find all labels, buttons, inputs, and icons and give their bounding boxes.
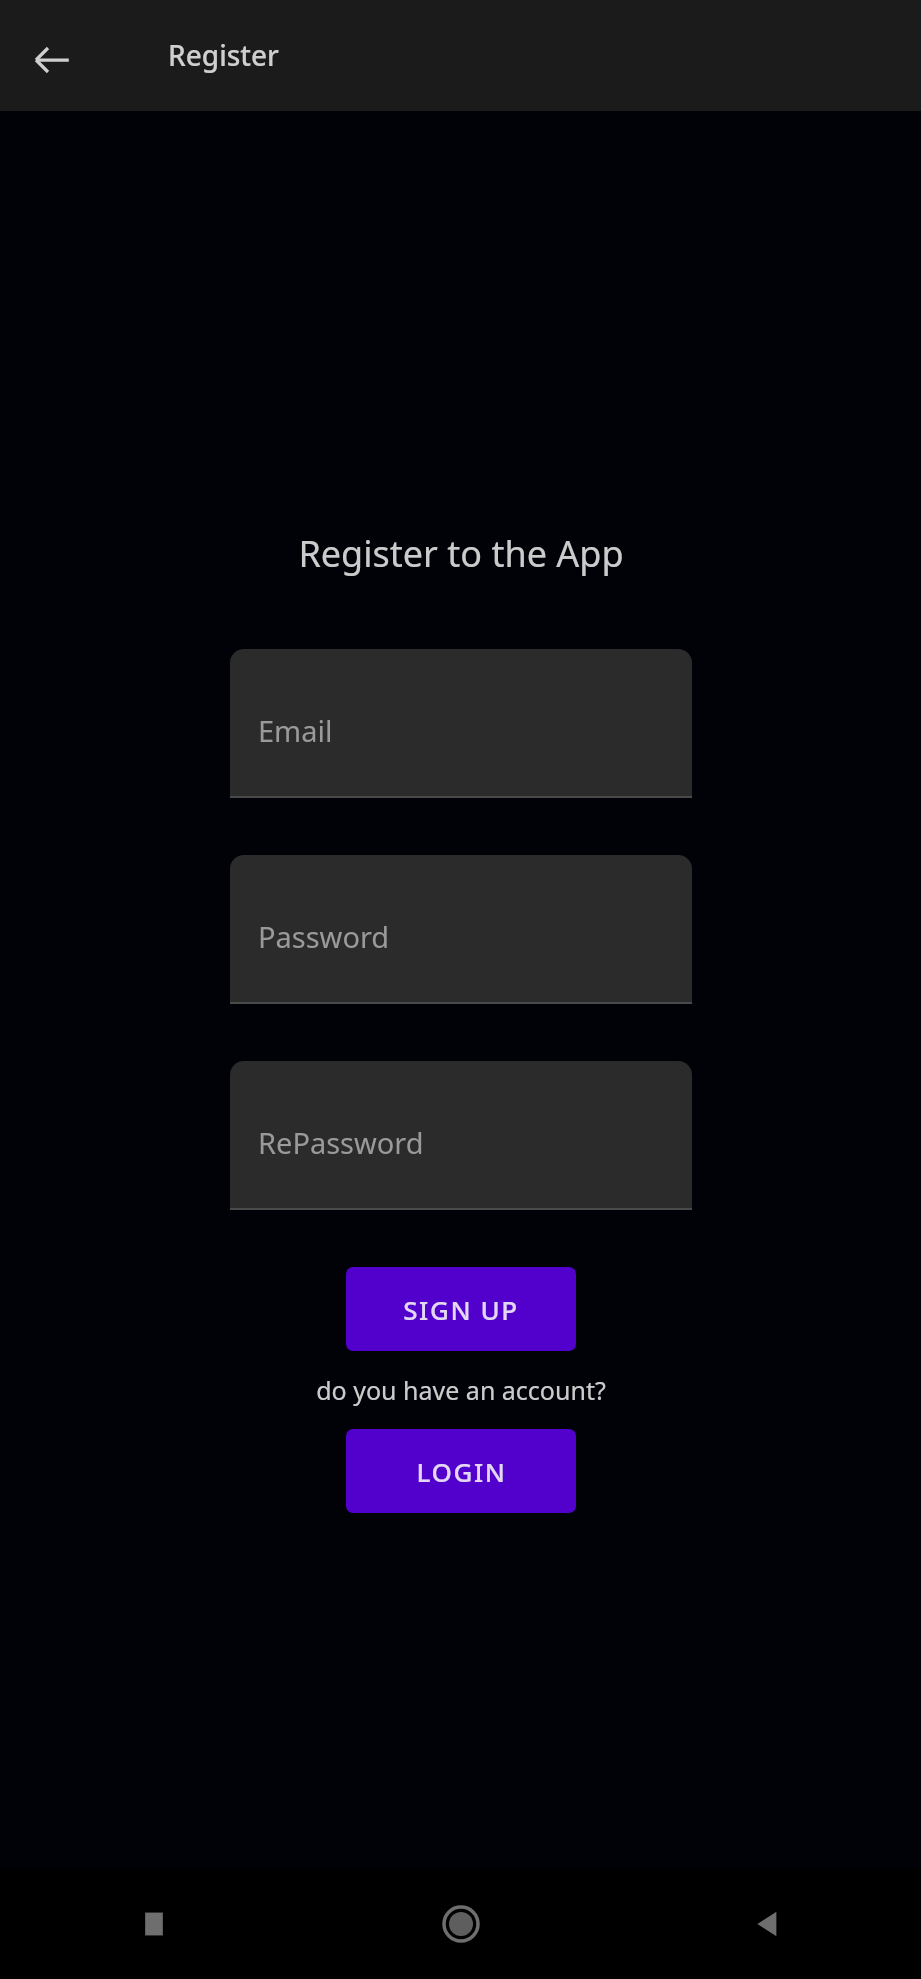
staticText: Register to the App: [298, 529, 624, 578]
button[interactable]: Back: [14, 22, 90, 98]
button[interactable]: Password: [230, 855, 692, 1004]
button[interactable]: Back: [614, 1868, 921, 1979]
staticText: do you have an account?: [316, 1373, 606, 1407]
staticText: Password: [258, 917, 390, 956]
staticText: SIGN UP: [403, 1292, 519, 1327]
staticText: LOGIN: [416, 1454, 507, 1489]
button[interactable]: Recent apps: [0, 1868, 307, 1979]
button[interactable]: LOGIN: [346, 1429, 576, 1513]
button[interactable]: SIGN UP: [346, 1267, 576, 1351]
button[interactable]: Home: [307, 1868, 614, 1979]
button[interactable]: Email: [230, 649, 692, 798]
staticText: RePassword: [258, 1123, 424, 1162]
button[interactable]: RePassword: [230, 1061, 692, 1210]
staticText: Register: [168, 36, 279, 74]
staticText: Email: [258, 711, 333, 750]
